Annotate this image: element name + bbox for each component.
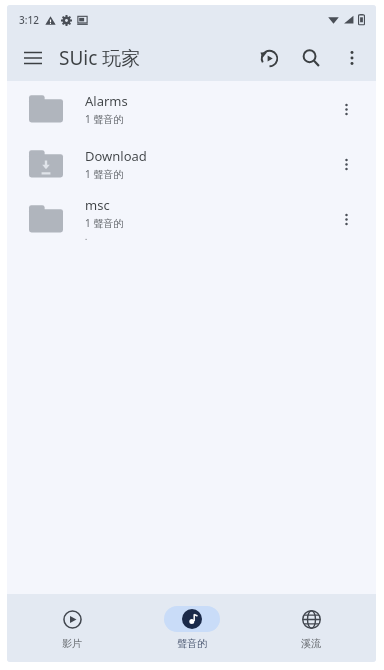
button[interactable]: 溪流 bbox=[256, 606, 366, 650]
button[interactable]: More options for Download bbox=[324, 142, 368, 186]
button[interactable]: More options bbox=[332, 38, 372, 78]
staticText: 溪流 bbox=[301, 637, 321, 650]
staticText: Download bbox=[85, 147, 147, 165]
button[interactable]: Download bbox=[7, 136, 376, 191]
button[interactable]: Search bbox=[291, 38, 331, 78]
button[interactable]: msc bbox=[7, 191, 376, 246]
button[interactable]: Open navigation menu bbox=[13, 38, 53, 78]
staticText: SUic 玩家 bbox=[59, 45, 141, 71]
staticText: 1 聲音的 bbox=[85, 167, 124, 181]
button[interactable]: History bbox=[249, 38, 289, 78]
button[interactable]: 影片 bbox=[17, 606, 127, 650]
staticText: 1 聲音的 bbox=[85, 112, 124, 126]
staticText: 聲音的 bbox=[177, 637, 207, 650]
staticText: . bbox=[85, 231, 88, 242]
button[interactable]: More options for msc bbox=[324, 197, 368, 241]
button[interactable]: More options for Alarms bbox=[324, 87, 368, 131]
button[interactable]: 聲音的 bbox=[137, 606, 247, 650]
staticText: 影片 bbox=[62, 637, 82, 650]
staticText: 1 聲音的 bbox=[85, 216, 124, 230]
staticText: 3:12 bbox=[19, 13, 39, 27]
button[interactable]: Alarms bbox=[7, 81, 376, 136]
staticText: Alarms bbox=[85, 92, 128, 110]
staticText: msc bbox=[85, 196, 110, 214]
